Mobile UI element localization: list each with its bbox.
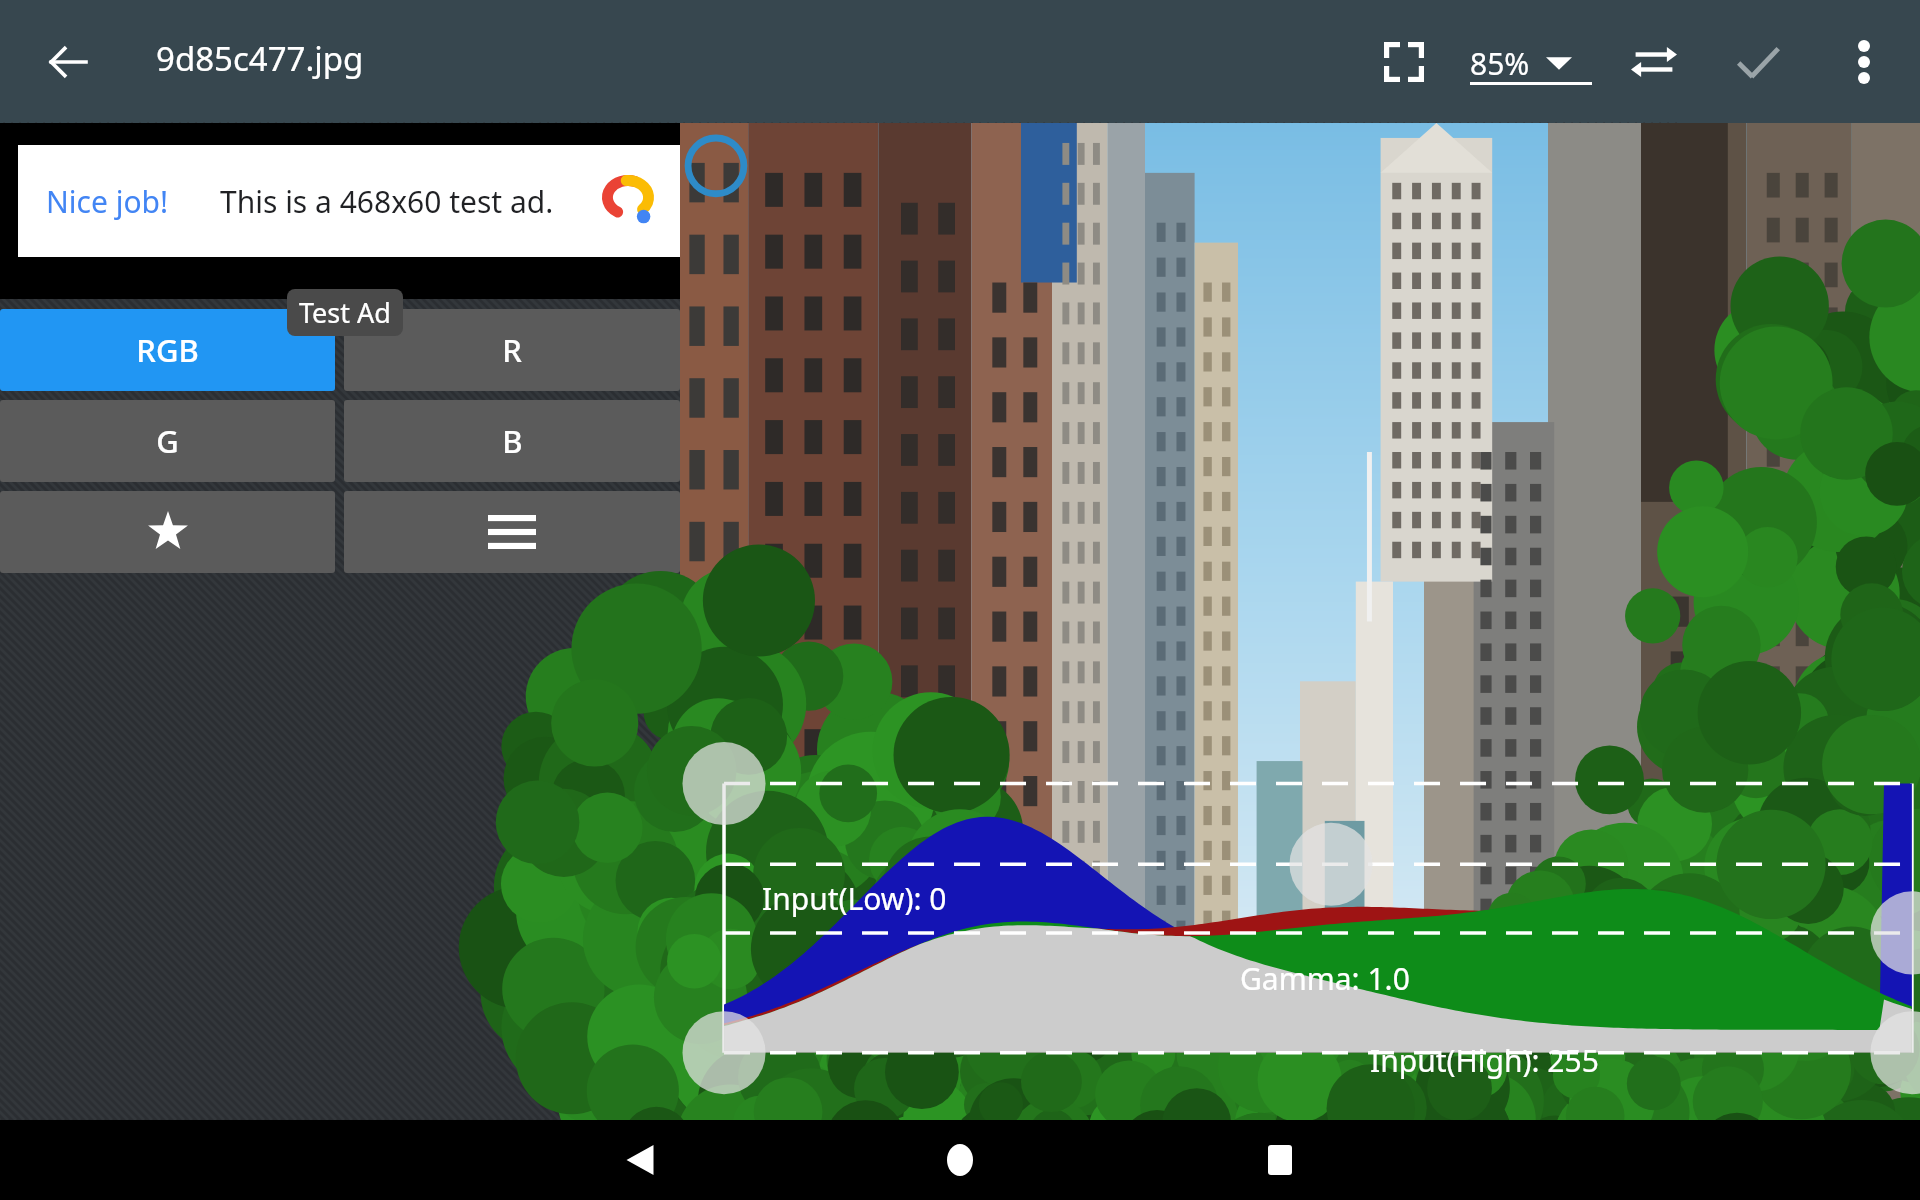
staticText: R — [502, 329, 522, 371]
staticText: RGB — [136, 329, 199, 371]
button[interactable]: B — [344, 400, 680, 482]
staticText: Input(High): 255 — [1370, 1040, 1599, 1081]
button[interactable]: Presets — [0, 491, 335, 573]
staticText: Input(Low): 0 — [762, 878, 947, 919]
button[interactable]: R — [344, 309, 680, 391]
staticText: B — [502, 420, 523, 462]
staticText: Nice job! — [46, 181, 169, 222]
button[interactable]: G — [0, 400, 335, 482]
staticText: Output(Low): 0 — [762, 1123, 971, 1164]
staticText: Test Ad — [299, 294, 391, 331]
staticText: G — [156, 420, 179, 462]
button[interactable]: Menu — [344, 491, 680, 573]
button[interactable]: Back — [600, 1120, 680, 1200]
staticText: Gamma: 1.0 — [1240, 958, 1410, 999]
button[interactable]: Compare — [1618, 26, 1690, 98]
button[interactable]: RGB — [0, 309, 335, 391]
button[interactable]: Nice job! — [18, 145, 680, 257]
button[interactable]: Recents — [1240, 1120, 1320, 1200]
button[interactable]: Home — [920, 1120, 1000, 1200]
button[interactable]: Fit to screen — [1368, 26, 1440, 98]
staticText: 9d85c477.jpg — [156, 36, 364, 81]
button[interactable]: Back — [34, 28, 102, 96]
staticText: 85% — [1470, 43, 1530, 84]
button[interactable]: 85% — [1470, 30, 1572, 96]
button[interactable]: More options — [1828, 26, 1900, 98]
staticText: This is a 468x60 test ad. — [220, 181, 554, 222]
button[interactable]: Apply — [1722, 26, 1794, 98]
